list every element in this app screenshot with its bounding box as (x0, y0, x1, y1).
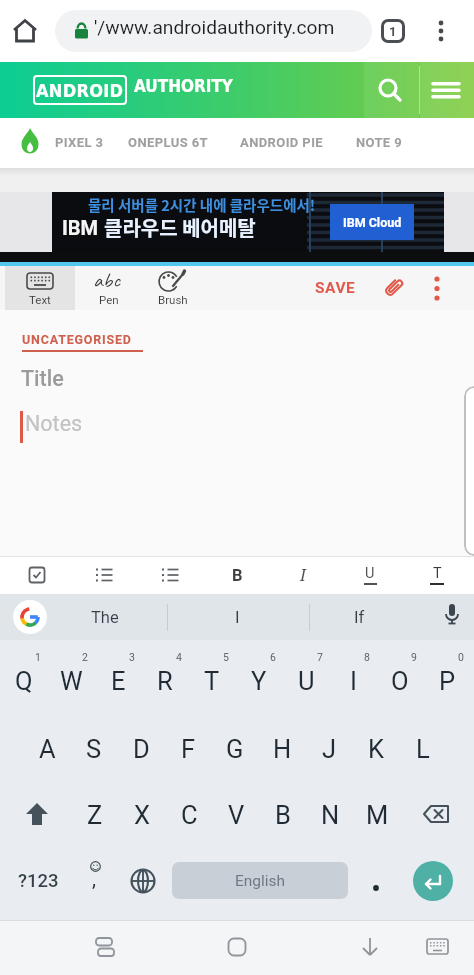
button[interactable]: F (165, 721, 211, 777)
button[interactable]: P (424, 653, 470, 709)
staticText: NOTE 9 (356, 135, 403, 150)
button[interactable]: X (119, 787, 165, 843)
button[interactable] (13, 600, 47, 634)
staticText: abc (93, 266, 120, 294)
staticText: D (133, 734, 150, 764)
staticText: L (416, 734, 430, 764)
button[interactable]: Y (236, 653, 282, 709)
button[interactable]: B (260, 787, 306, 843)
staticText: 2 (82, 651, 88, 663)
button[interactable]: J (306, 721, 352, 777)
button[interactable]: , (76, 859, 116, 903)
button[interactable]: U (355, 560, 385, 586)
button[interactable]: 1 (381, 19, 405, 43)
staticText: PIXEL 3 (55, 135, 104, 150)
button[interactable]: Q (1, 653, 47, 709)
button[interactable]: T (189, 653, 235, 709)
staticText: I (300, 564, 306, 586)
staticText: The (91, 608, 119, 627)
staticText: B (232, 566, 243, 585)
button[interactable] (427, 276, 447, 302)
button[interactable]: G (212, 721, 258, 777)
staticText: 1 (389, 24, 397, 39)
staticText: T (204, 666, 220, 696)
button[interactable] (11, 17, 39, 45)
button[interactable] (443, 604, 461, 631)
button[interactable]: A (24, 721, 70, 777)
staticText: 0 (458, 651, 464, 663)
button[interactable]: O (377, 653, 423, 709)
staticText: 9 (411, 651, 417, 663)
staticText: W (60, 666, 83, 696)
button[interactable]: K (353, 721, 399, 777)
button[interactable]: B (222, 560, 252, 590)
button[interactable] (29, 567, 45, 583)
button[interactable]: '/www.androidauthority.com (55, 10, 372, 52)
staticText: Y (251, 666, 267, 696)
staticText: 4 (176, 651, 182, 663)
button[interactable]: I (197, 600, 277, 634)
button[interactable]: The (65, 600, 145, 634)
button[interactable] (87, 929, 123, 965)
staticText: J (322, 734, 337, 764)
button[interactable]: SAVE (306, 272, 364, 304)
button[interactable] (80, 266, 136, 310)
button[interactable]: D (118, 721, 164, 777)
button[interactable] (433, 82, 461, 99)
button[interactable]: T (422, 560, 452, 586)
button[interactable] (380, 275, 406, 301)
button[interactable] (431, 19, 451, 43)
staticText: T (433, 565, 442, 582)
button[interactable]: H (259, 721, 305, 777)
button[interactable] (96, 568, 113, 582)
button[interactable]: Z (72, 787, 118, 843)
button[interactable]: L (400, 721, 446, 777)
button[interactable]: English (172, 862, 348, 899)
staticText: 6 (270, 651, 276, 663)
button[interactable] (356, 859, 396, 903)
staticText: IBM Cloud (343, 215, 402, 230)
staticText: SAVE (315, 279, 356, 297)
button[interactable]: ANDROID (33, 75, 127, 105)
button[interactable]: W (48, 653, 94, 709)
staticText: Pen (99, 293, 119, 306)
staticText: S (86, 734, 102, 764)
button[interactable] (413, 861, 453, 901)
button[interactable]: R (142, 653, 188, 709)
button[interactable] (219, 929, 255, 965)
button[interactable]: M (354, 787, 400, 843)
button[interactable]: N (307, 787, 353, 843)
button[interactable]: U (283, 653, 329, 709)
button[interactable]: 물리 서버를 2시간 내에 클라우드에서! (52, 192, 444, 252)
staticText: H (273, 734, 292, 764)
staticText: K (368, 734, 384, 764)
button[interactable]: I (288, 560, 318, 590)
button[interactable]: S (71, 721, 117, 777)
staticText: Brush (158, 293, 188, 306)
staticText: I (350, 666, 357, 696)
button[interactable] (123, 861, 163, 901)
button[interactable]: ?123 (8, 859, 68, 903)
button[interactable] (417, 795, 457, 835)
button[interactable] (18, 795, 56, 835)
staticText: If (354, 608, 365, 627)
staticText: 3 (129, 651, 135, 663)
button[interactable] (162, 568, 179, 582)
button[interactable] (378, 78, 402, 102)
button[interactable] (5, 266, 75, 310)
button[interactable]: C (166, 787, 212, 843)
staticText: M (366, 800, 389, 830)
button[interactable]: I (330, 653, 376, 709)
staticText: 1 (35, 651, 41, 663)
button[interactable]: V (213, 787, 259, 843)
button[interactable] (424, 931, 452, 963)
button[interactable] (144, 266, 202, 310)
staticText: ?123 (18, 870, 59, 892)
staticText: C (181, 800, 198, 830)
button[interactable]: If (319, 600, 399, 634)
button[interactable]: IBM Cloud (330, 204, 414, 240)
button[interactable] (352, 929, 388, 965)
button[interactable]: E (95, 653, 141, 709)
staticText: G (226, 734, 244, 764)
staticText: AUTHORITY (134, 76, 233, 96)
